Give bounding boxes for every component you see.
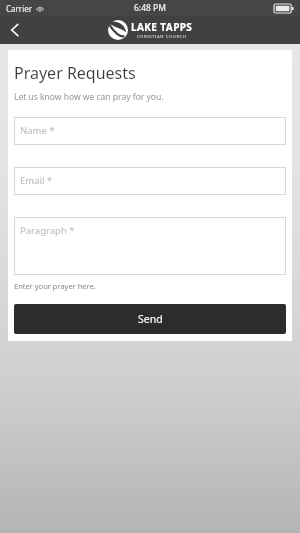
staticText: LAKE TAPPS	[131, 20, 193, 34]
staticText: Enter your prayer here.	[14, 281, 96, 291]
staticText: Prayer Requests	[14, 62, 136, 84]
staticText: Paragraph *	[20, 224, 75, 237]
staticText: Email *	[20, 174, 53, 187]
button[interactable]: Send	[14, 304, 286, 334]
button[interactable]: Email *	[14, 167, 286, 195]
staticText: Carrier	[6, 3, 33, 14]
staticText: Let us know how we can pray for you.	[14, 91, 164, 103]
staticText: Name *	[20, 124, 55, 137]
staticText: Send	[138, 312, 163, 326]
staticText: CHRISTIAN CHURCH	[137, 34, 187, 40]
button[interactable]: Paragraph *	[14, 217, 286, 275]
button[interactable]: Back	[0, 16, 30, 44]
button[interactable]: Name *	[14, 117, 286, 145]
staticText: 6:48 PM	[134, 2, 166, 14]
